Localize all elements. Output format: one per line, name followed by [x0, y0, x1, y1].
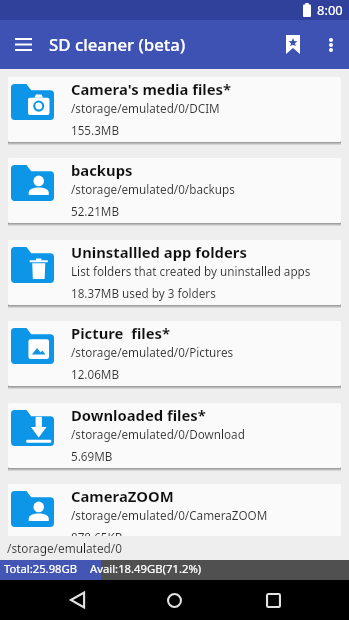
button[interactable]: CameraZOOM — [8, 484, 341, 536]
staticText: /storage/emulated/0/Download — [71, 426, 245, 442]
button[interactable]: Open navigation menu — [0, 20, 47, 69]
button[interactable]: More options — [313, 20, 349, 69]
staticText: Camera's media files* — [71, 79, 231, 99]
staticText: Picture files* — [71, 323, 170, 343]
staticText: Total:25.98GB — [4, 561, 78, 576]
button[interactable]: Camera's media files* — [8, 77, 341, 142]
staticText: /storage/emulated/0/backups — [71, 181, 235, 197]
staticText: 5.69MB — [71, 448, 113, 464]
staticText: List folders that created by uninstalled… — [71, 263, 311, 279]
staticText: Avail:18.49GB(71.2%) — [90, 561, 202, 576]
staticText: 18.37MB used by 3 folders — [71, 285, 216, 301]
button[interactable]: backups — [8, 158, 341, 223]
staticText: 8:00 — [317, 1, 343, 19]
staticText: CameraZOOM — [71, 486, 174, 506]
staticText: /storage/emulated/0/CameraZOOM — [71, 507, 268, 523]
staticText: /storage/emulated/0 — [7, 540, 122, 556]
button[interactable]: Home — [150, 580, 199, 620]
button[interactable]: Uninstallled app folders — [8, 240, 341, 305]
staticText: backups — [71, 160, 133, 180]
button[interactable]: Back — [53, 580, 102, 620]
button[interactable]: Downloaded files* — [8, 403, 341, 468]
staticText: 52.21MB — [71, 203, 120, 219]
staticText: Downloaded files* — [71, 405, 206, 425]
button[interactable]: Bookmarks — [273, 20, 313, 69]
staticText: SD cleaner (beta) — [49, 33, 186, 56]
button[interactable]: Picture files* — [8, 321, 341, 386]
staticText: 12.06MB — [71, 366, 120, 382]
staticText: /storage/emulated/0/DCIM — [71, 100, 220, 116]
staticText: Uninstallled app folders — [71, 242, 247, 262]
button[interactable]: Recent apps — [249, 580, 298, 620]
staticText: /storage/emulated/0/Pictures — [71, 344, 234, 360]
staticText: 878.65KB — [71, 529, 123, 536]
staticText: 155.3MB — [71, 122, 120, 138]
